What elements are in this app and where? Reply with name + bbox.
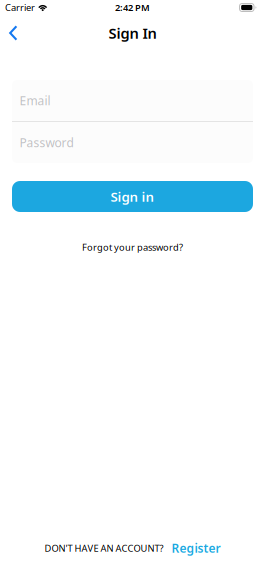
staticText: Password [19,134,73,150]
button[interactable]: Forgot your password? [82,241,183,253]
staticText: Forgot your password? [82,241,183,253]
staticText: DON'T HAVE AN ACCOUNT? [44,542,163,554]
staticText: Carrier [5,1,35,14]
staticText: Sign In [108,23,156,43]
button[interactable]: Sign in [12,181,253,212]
staticText: 2:42 PM [115,1,150,14]
button[interactable]: Register [171,540,220,556]
staticText: Register [171,540,220,556]
button[interactable]: Back [0,18,18,48]
staticText: Email [19,92,50,108]
staticText: Sign in [110,188,154,205]
